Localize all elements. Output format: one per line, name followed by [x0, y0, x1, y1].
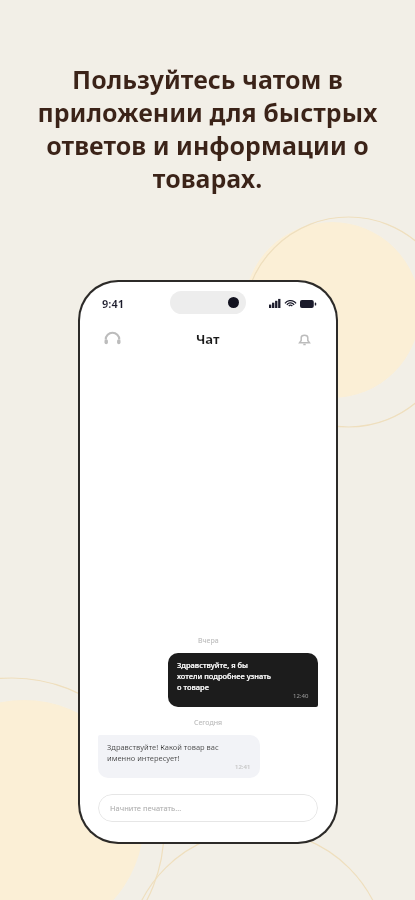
staticText: Начните печатать...: [110, 803, 182, 813]
button[interactable]: Здравствуйте, я бы хотели подробнее узна…: [168, 653, 318, 707]
button[interactable]: Notifications: [288, 323, 320, 355]
staticText: 9:41: [102, 296, 124, 311]
staticText: 12:41: [235, 763, 251, 771]
staticText: 12:40: [293, 692, 309, 700]
button[interactable]: Начните печатать...: [98, 794, 318, 822]
staticText: Здравствуйте! Какой товар вас именно инт…: [107, 742, 219, 763]
staticText: Вчера: [198, 636, 219, 646]
button[interactable]: Support: [96, 323, 128, 355]
staticText: Пользуйтесь чатом в приложении для быстр…: [37, 62, 378, 195]
button[interactable]: Здравствуйте! Какой товар вас именно инт…: [98, 735, 260, 778]
staticText: Чат: [196, 330, 220, 348]
staticText: Здравствуйте, я бы хотели подробнее узна…: [177, 660, 271, 692]
staticText: Сегодня: [194, 718, 223, 728]
